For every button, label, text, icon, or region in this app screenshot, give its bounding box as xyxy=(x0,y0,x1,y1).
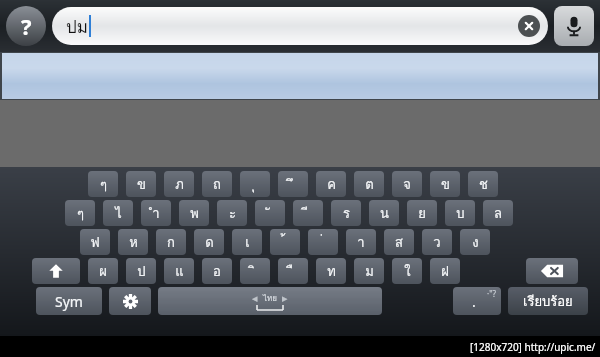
button[interactable]: ท xyxy=(316,258,346,284)
staticText: ปม xyxy=(66,13,88,40)
staticText: ท xyxy=(327,261,336,282)
button[interactable]: ะ xyxy=(217,200,247,226)
button[interactable]: ค xyxy=(316,171,346,197)
button[interactable]: ช xyxy=(468,171,498,197)
staticText: ไทย xyxy=(263,292,277,305)
button[interactable]: แ xyxy=(164,258,194,284)
button[interactable]: ร xyxy=(331,200,361,226)
staticText: แ xyxy=(175,261,184,282)
staticText: า xyxy=(357,232,365,253)
button[interactable]: ข xyxy=(126,171,156,197)
button[interactable]: Help xyxy=(6,6,46,46)
staticText: ล xyxy=(494,203,502,224)
button[interactable]: Sym xyxy=(36,287,102,315)
staticText: ง xyxy=(472,232,479,253)
button[interactable]: ใ xyxy=(392,258,422,284)
staticText: บ xyxy=(456,203,465,224)
staticText: ฝ xyxy=(441,261,449,282)
button[interactable]: ผ xyxy=(88,258,118,284)
staticText: ? xyxy=(21,11,32,41)
button[interactable]: ิ xyxy=(240,258,270,284)
button[interactable]: Period xyxy=(453,287,501,315)
staticText: ·"? xyxy=(487,288,496,299)
staticText: ข xyxy=(137,174,146,195)
staticText: ๆ xyxy=(77,203,84,224)
button[interactable]: จ xyxy=(392,171,422,197)
button[interactable]: Settings xyxy=(109,287,151,315)
button[interactable]: ก xyxy=(156,229,186,255)
staticText: ม xyxy=(365,261,374,282)
button[interactable]: บ xyxy=(445,200,475,226)
button[interactable]: ป xyxy=(126,258,156,284)
staticText: Sym xyxy=(55,292,83,311)
staticText: ด xyxy=(205,232,214,253)
button[interactable]: ั xyxy=(255,200,285,226)
staticText: ข xyxy=(441,174,450,195)
staticText: ภ xyxy=(175,174,184,195)
staticText: เ xyxy=(245,232,250,253)
button[interactable]: ๆ xyxy=(88,171,118,197)
button[interactable]: ง xyxy=(460,229,490,255)
button[interactable]: ฟ xyxy=(80,229,110,255)
staticText: พ xyxy=(190,203,199,224)
button[interactable]: อ xyxy=(202,258,232,284)
staticText: ป xyxy=(137,261,146,282)
staticText: ◀ xyxy=(252,295,258,303)
staticText: ไ xyxy=(115,203,122,224)
staticText: จ xyxy=(403,174,411,195)
button[interactable]: ถ xyxy=(202,171,232,197)
button[interactable]: Clear xyxy=(518,15,540,37)
button[interactable]: ี xyxy=(293,200,323,226)
button[interactable]: ุ xyxy=(240,171,270,197)
button[interactable]: ห xyxy=(118,229,148,255)
staticText: ต xyxy=(365,174,374,195)
button[interactable]: ๆ xyxy=(65,200,95,226)
staticText: ย xyxy=(418,203,426,224)
button[interactable]: เ xyxy=(232,229,262,255)
staticText: . xyxy=(472,292,476,311)
button[interactable]: เรียบร้อย xyxy=(508,287,588,315)
button[interactable]: ภ xyxy=(164,171,194,197)
button[interactable]: ต xyxy=(354,171,384,197)
button[interactable]: ำ xyxy=(141,200,171,226)
staticText: ถ xyxy=(213,174,221,195)
button[interactable]: ้ xyxy=(270,229,300,255)
button[interactable]: ไ xyxy=(103,200,133,226)
button[interactable]: ล xyxy=(483,200,513,226)
staticText: ห xyxy=(129,232,138,253)
staticText: ช xyxy=(479,174,488,195)
staticText: ก xyxy=(167,232,175,253)
staticText: เรียบร้อย xyxy=(523,291,573,312)
button[interactable]: ว xyxy=(422,229,452,255)
staticText: น xyxy=(380,203,389,224)
staticText: ฟ xyxy=(90,232,100,253)
button[interactable]: น xyxy=(369,200,399,226)
button[interactable]: Space xyxy=(158,287,382,315)
staticText: ำ xyxy=(152,203,160,224)
staticText: ผ xyxy=(99,261,107,282)
button[interactable]: ฝ xyxy=(430,258,460,284)
staticText: ๆ xyxy=(100,174,107,195)
button[interactable]: ย xyxy=(407,200,437,226)
staticText: ▶ xyxy=(282,295,288,303)
button[interactable]: ปม xyxy=(52,7,548,45)
staticText: [1280x720] http://upic.me/ xyxy=(470,340,596,354)
button[interactable]: ื xyxy=(278,258,308,284)
button[interactable]: ส xyxy=(384,229,414,255)
button[interactable] xyxy=(2,53,598,99)
button[interactable]: ่ xyxy=(308,229,338,255)
staticText: ส xyxy=(395,232,403,253)
button[interactable]: ึ xyxy=(278,171,308,197)
button[interactable]: Backspace xyxy=(526,258,578,284)
button[interactable]: พ xyxy=(179,200,209,226)
button[interactable]: ด xyxy=(194,229,224,255)
staticText: ค xyxy=(327,174,336,195)
button[interactable]: ข xyxy=(430,171,460,197)
staticText: ว xyxy=(433,232,441,253)
staticText: ใ xyxy=(404,261,411,282)
button[interactable]: า xyxy=(346,229,376,255)
button[interactable]: Shift xyxy=(32,258,80,284)
button[interactable]: ม xyxy=(354,258,384,284)
button[interactable]: Voice search xyxy=(554,6,594,46)
staticText: ะ xyxy=(229,203,236,224)
